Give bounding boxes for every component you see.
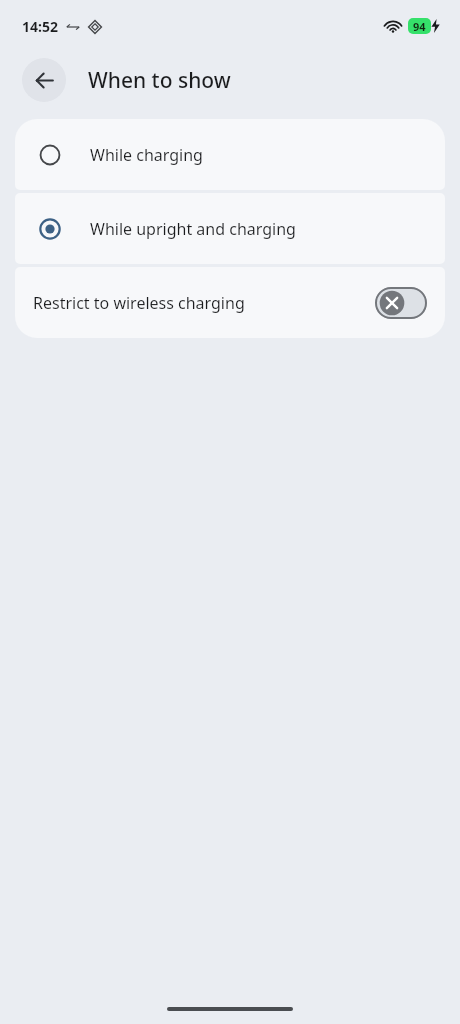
staticText: 94 [413,19,426,34]
button[interactable]: While charging [15,119,445,190]
button[interactable]: Restrict to wireless charging [15,267,445,338]
staticText: While charging [90,144,203,166]
staticText: 14:52 [22,17,58,36]
button[interactable]: Restrict to wireless charging toggle [375,287,427,319]
button[interactable]: While upright and charging [15,193,445,264]
staticText: Restrict to wireless charging [33,292,375,314]
staticText: When to show [88,66,231,95]
button[interactable]: Back [22,58,66,102]
staticText: While upright and charging [90,218,296,240]
